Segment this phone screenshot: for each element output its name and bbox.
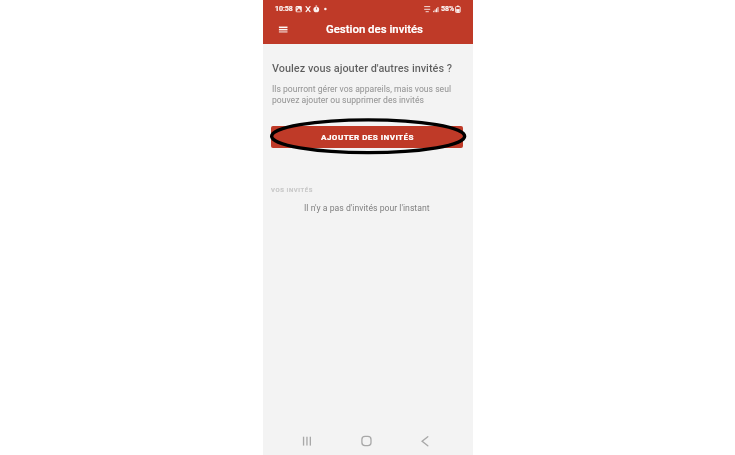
staticText: Ils pourront gérer vos appareils, mais v… <box>272 84 451 105</box>
staticText: VOS INVITÉS <box>271 186 314 193</box>
button[interactable]: AJOUTER DES INVITÉS <box>271 126 463 148</box>
staticText: 58% <box>441 5 455 13</box>
button[interactable]: Open navigation menu <box>271 19 295 43</box>
button[interactable]: Recent apps <box>291 427 319 449</box>
button[interactable]: Back <box>409 427 437 449</box>
staticText: Gestion des invités <box>326 22 423 35</box>
staticText: 10:58 <box>275 5 293 13</box>
staticText: Voulez vous ajouter d'autres invités ? <box>272 62 453 75</box>
button[interactable]: Home <box>348 427 376 449</box>
staticText: Il n'y a pas d'invités pour l'instant <box>304 203 430 213</box>
staticText: AJOUTER DES INVITÉS <box>321 132 414 141</box>
